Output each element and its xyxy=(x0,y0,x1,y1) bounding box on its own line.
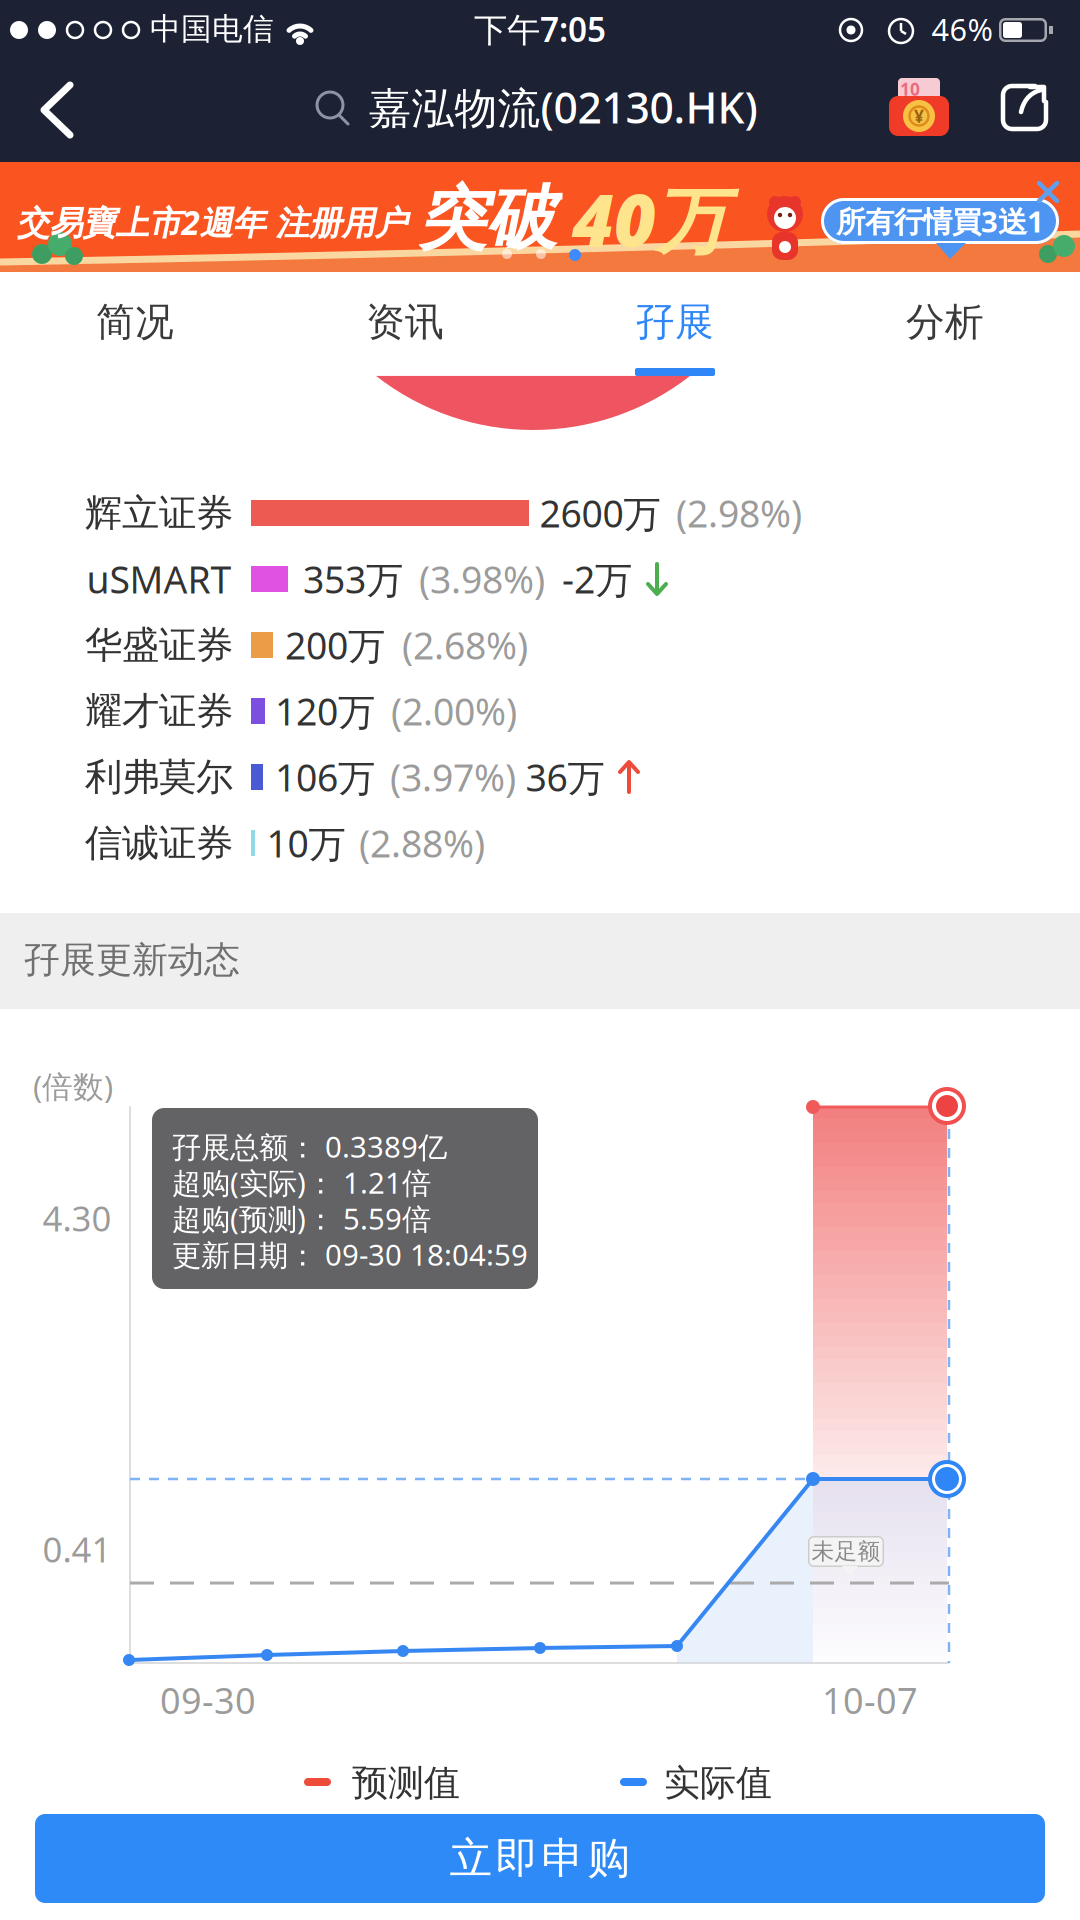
staticText: 所有行情買3送1 xyxy=(836,201,1044,240)
staticText: 信诚证券 xyxy=(85,820,233,866)
staticText: (2.00%) xyxy=(391,686,517,736)
button[interactable]: Red packet xyxy=(887,78,951,138)
staticText: 2600万 xyxy=(539,488,660,538)
staticText: 200万 xyxy=(285,620,385,670)
staticText: 孖展总额： 0.3389亿 xyxy=(172,1127,447,1166)
staticText: 更新日期： 09-30 18:04:59 xyxy=(172,1235,528,1274)
staticText: 华盛证券 xyxy=(85,622,233,668)
staticText: 10-07 xyxy=(822,1676,918,1724)
staticText: 交易寶上市2週年 注册用户 xyxy=(16,200,407,244)
staticText: uSMART xyxy=(86,554,231,604)
staticText: 46% xyxy=(931,9,992,49)
staticText: 下午7:05 xyxy=(474,7,606,51)
staticText: (倍数) xyxy=(33,1066,113,1106)
staticText: 资讯 xyxy=(366,298,444,346)
staticText: (2.98%) xyxy=(676,488,802,538)
button[interactable]: 简况 xyxy=(45,287,225,357)
button[interactable]: 交易寶上市2週年 注册用户 xyxy=(0,162,1080,272)
staticText: (2.68%) xyxy=(402,620,528,670)
staticText: 10万 xyxy=(266,818,345,868)
staticText: 36万 xyxy=(525,752,604,802)
button[interactable]: 孖展 xyxy=(585,287,765,357)
staticText: 利弗莫尔 xyxy=(85,754,233,800)
button[interactable]: 立即申购 xyxy=(35,1814,1045,1903)
staticText: 孖展 xyxy=(636,298,714,346)
button[interactable]: Back xyxy=(12,60,102,160)
staticText: 超购(预测)： 5.59倍 xyxy=(172,1199,431,1238)
staticText: (2.88%) xyxy=(359,818,485,868)
staticText: 预测值 xyxy=(352,1761,460,1805)
staticText: 10 xyxy=(900,77,920,100)
staticText: (3.98%) xyxy=(419,554,545,604)
staticText: 简况 xyxy=(96,298,174,346)
button[interactable]: 分析 xyxy=(855,287,1035,357)
staticText: 超购(实际)： 1.21倍 xyxy=(172,1163,431,1202)
staticText: 40万 xyxy=(572,171,728,267)
button[interactable]: 资讯 xyxy=(315,287,495,357)
staticText: 0.41 xyxy=(42,1526,111,1572)
staticText: (3.97%) xyxy=(390,752,516,802)
staticText: 353万 xyxy=(303,554,403,604)
button[interactable]: 嘉泓物流(02130.HK) xyxy=(260,66,820,146)
staticText: 分析 xyxy=(906,298,984,346)
button[interactable]: Close banner xyxy=(1030,174,1066,210)
staticText: 立即申购 xyxy=(449,1832,630,1885)
staticText: 106万 xyxy=(275,752,375,802)
staticText: 4.30 xyxy=(42,1195,111,1241)
staticText: 实际值 xyxy=(664,1761,772,1805)
staticText: 未足额 xyxy=(811,1538,880,1565)
staticText: 辉立证券 xyxy=(85,490,233,536)
staticText: 突破 xyxy=(418,176,556,262)
button[interactable]: Share xyxy=(999,82,1055,138)
staticText: 孖展更新动态 xyxy=(24,938,240,982)
staticText: -2万 xyxy=(562,554,632,604)
staticText: 嘉泓物流(02130.HK) xyxy=(368,79,757,135)
staticText: 120万 xyxy=(275,686,375,736)
staticText: 中国电信 xyxy=(150,10,274,48)
staticText: ¥ xyxy=(914,104,924,127)
staticText: 09-30 xyxy=(160,1676,256,1724)
staticText: 耀才证券 xyxy=(85,688,233,734)
